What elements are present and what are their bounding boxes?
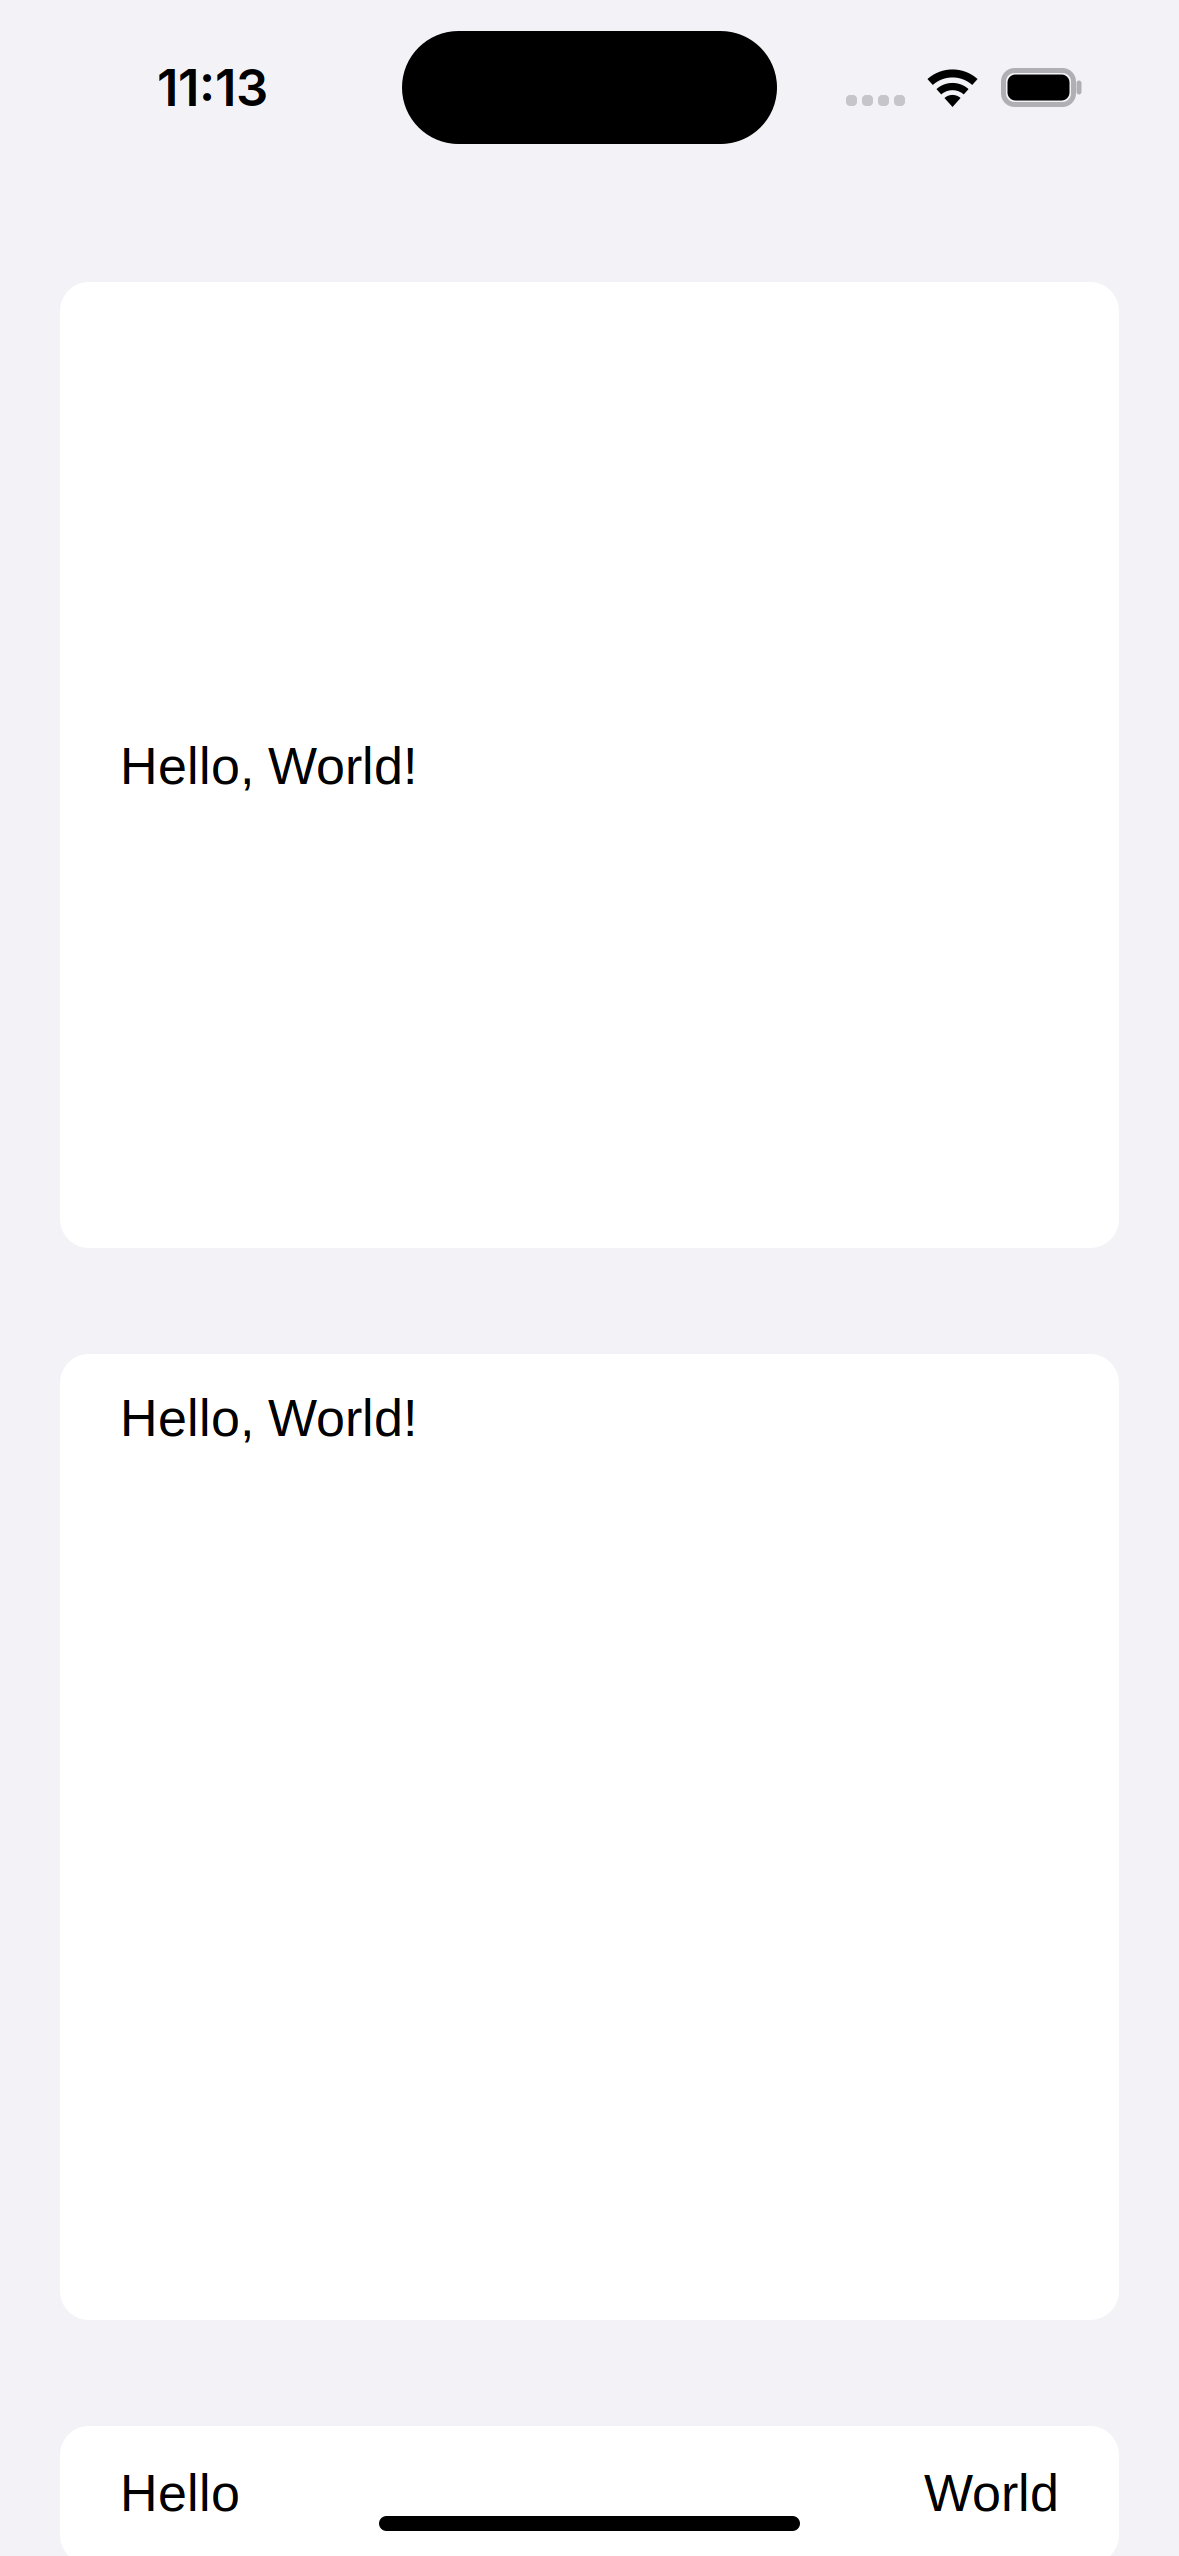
button[interactable]: Hello, World! [60,1354,1119,2320]
staticText: Hello, World! [120,1389,417,1447]
button[interactable]: Hello, World! [60,282,1119,1248]
staticText: 11:13 [157,57,268,118]
staticText: Hello, World! [120,737,417,795]
staticText: World [924,2464,1059,2522]
button[interactable]: Hello [60,2426,1119,2556]
staticText: Hello [120,2464,240,2522]
